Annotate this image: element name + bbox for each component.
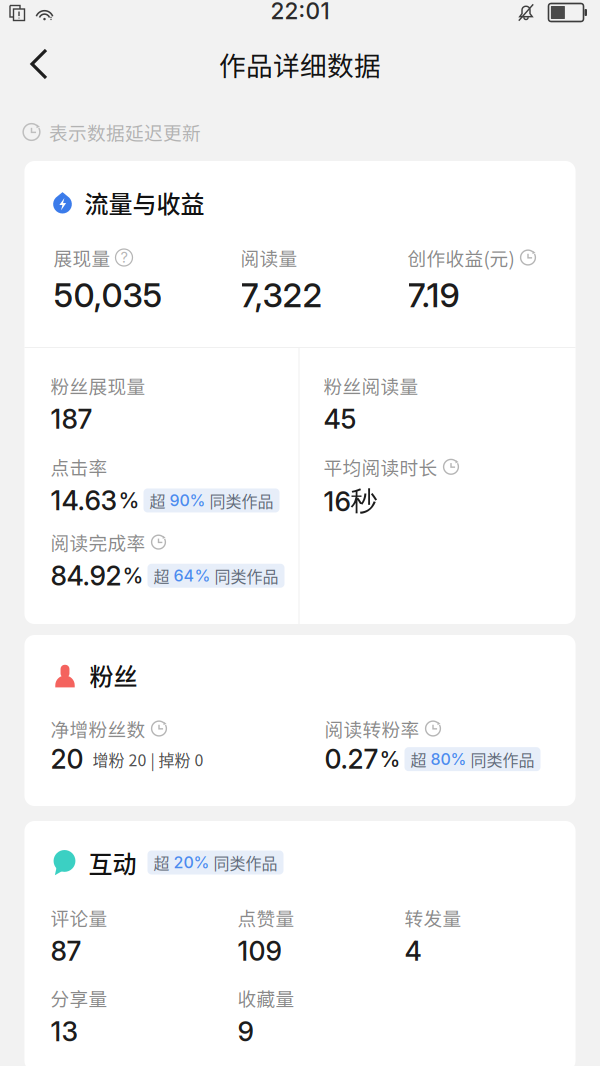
staticText: 评论量 <box>50 904 107 931</box>
staticText: 表示数据延迟更新 <box>49 118 201 145</box>
staticText: 流量与收益 <box>84 185 204 220</box>
staticText: 收藏量 <box>237 984 294 1011</box>
staticText: 80% <box>430 749 466 769</box>
staticText: 粉丝 <box>89 658 137 692</box>
staticText: 14.63 <box>50 484 117 517</box>
staticText: 阅读量 <box>240 244 297 271</box>
staticText: 13 <box>50 1015 78 1048</box>
staticText: 同类作品 <box>205 489 273 512</box>
staticText: 20% <box>173 853 209 872</box>
staticText: 粉丝展现量 <box>50 372 145 399</box>
staticText: 20 <box>50 743 83 775</box>
staticText: 增粉 20 | 掉粉 0 <box>92 748 203 771</box>
staticText: 超 <box>149 489 169 512</box>
staticText: % <box>122 563 143 589</box>
staticText: 50,035 <box>53 275 162 315</box>
staticText: 同类作品 <box>210 564 278 587</box>
staticText: 64% <box>173 566 210 585</box>
staticText: 22:01 <box>270 0 329 25</box>
staticText: 平均阅读时长 <box>323 453 437 480</box>
staticText: 84.92 <box>50 560 121 592</box>
staticText: % <box>118 488 139 513</box>
staticText: 作品详细数据 <box>219 45 381 83</box>
staticText: 点赞量 <box>237 904 294 931</box>
staticText: 7,322 <box>240 275 322 315</box>
staticText: 9 <box>237 1015 253 1048</box>
staticText: 展现量 <box>53 244 110 271</box>
staticText: % <box>379 746 400 772</box>
staticText: 转发量 <box>404 904 461 931</box>
staticText: 16秒 <box>323 484 377 518</box>
staticText: 同类作品 <box>209 851 277 874</box>
staticText: 超 <box>410 748 430 771</box>
staticText: 4 <box>404 935 421 967</box>
staticText: 超 <box>153 564 173 587</box>
staticText: 87 <box>50 935 81 967</box>
staticText: 同类作品 <box>466 748 534 771</box>
staticText: 点击率 <box>50 453 107 480</box>
staticText: 90% <box>169 491 205 510</box>
button[interactable]: 返回 <box>12 36 66 92</box>
staticText: 187 <box>50 403 92 435</box>
staticText: 阅读完成率 <box>50 529 145 556</box>
staticText: 互动 <box>88 845 136 880</box>
staticText: 粉丝阅读量 <box>323 372 418 399</box>
staticText: 阅读转粉率 <box>324 715 419 742</box>
staticText: 45 <box>323 403 356 435</box>
staticText: 分享量 <box>50 984 107 1011</box>
staticText: 0.27 <box>324 743 378 775</box>
staticText: 7.19 <box>407 275 459 315</box>
staticText: 净增粉丝数 <box>50 715 145 742</box>
staticText: 109 <box>237 935 281 967</box>
staticText: ? <box>120 249 127 266</box>
staticText: 创作收益(元) <box>407 244 514 271</box>
staticText: 超 <box>153 851 173 874</box>
